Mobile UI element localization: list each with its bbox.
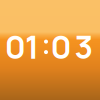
staticText: 0 [5,24,26,68]
staticText: 1 [25,24,39,68]
button[interactable]: Timer 01:03 [0,0,100,100]
staticText: 0 [50,24,71,68]
staticText: 3 [74,24,93,68]
